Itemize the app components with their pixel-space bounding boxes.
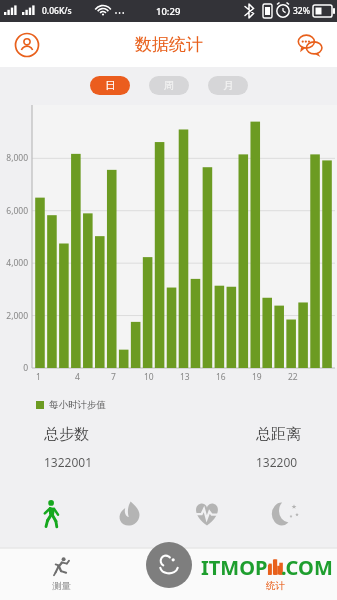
button[interactable]: 月 bbox=[208, 76, 248, 95]
staticText: 132200 bbox=[256, 454, 298, 470]
button[interactable]: Calories bbox=[108, 492, 152, 536]
staticText: 0 bbox=[23, 362, 28, 374]
staticText: 4 bbox=[75, 371, 80, 383]
staticText: 总距离 bbox=[256, 425, 301, 444]
staticText: .COM bbox=[281, 554, 333, 581]
button[interactable]: Measure bbox=[146, 542, 192, 588]
staticText: 每小时计步值 bbox=[49, 399, 106, 411]
staticText: 数据统计 bbox=[135, 34, 203, 55]
staticText: 22 bbox=[288, 371, 298, 383]
staticText: 测量 bbox=[52, 580, 71, 592]
staticText: 日 bbox=[105, 79, 116, 92]
staticText: 周 bbox=[164, 79, 175, 92]
staticText: 10:29 bbox=[156, 5, 181, 18]
button[interactable]: Heart rate bbox=[185, 492, 229, 536]
button[interactable]: Profile bbox=[10, 28, 44, 62]
button[interactable]: 测量 bbox=[0, 548, 122, 600]
staticText: 1322001 bbox=[44, 454, 93, 470]
staticText: 统计 bbox=[266, 580, 285, 592]
staticText: 10 bbox=[144, 371, 154, 383]
staticText: 2,000 bbox=[6, 310, 28, 322]
staticText: ITMOP bbox=[201, 554, 268, 581]
staticText: 13 bbox=[180, 371, 190, 383]
staticText: 0.06K/s bbox=[42, 5, 72, 17]
staticText: 6,000 bbox=[6, 205, 28, 217]
button[interactable]: 日 bbox=[90, 76, 130, 95]
button[interactable]: 周 bbox=[149, 76, 189, 95]
button[interactable]: Messages bbox=[293, 28, 327, 62]
staticText: 8,000 bbox=[6, 152, 28, 164]
staticText: 总步数 bbox=[44, 425, 89, 444]
staticText: 月 bbox=[223, 79, 234, 92]
staticText: 4,000 bbox=[6, 257, 28, 269]
button[interactable]: 统计 bbox=[214, 548, 337, 600]
staticText: 32% bbox=[293, 5, 310, 17]
button[interactable]: Steps bbox=[30, 492, 74, 536]
button[interactable]: Sleep bbox=[263, 492, 307, 536]
staticText: 16 bbox=[216, 371, 226, 383]
staticText: 7 bbox=[111, 371, 116, 383]
staticText: 1 bbox=[36, 371, 41, 383]
staticText: 19 bbox=[252, 371, 262, 383]
